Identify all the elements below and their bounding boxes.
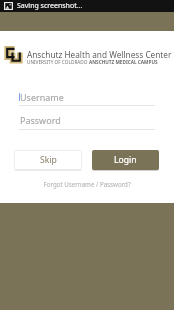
staticText: Anschutz Health and Wellness Center bbox=[27, 49, 172, 60]
staticText: Login bbox=[114, 154, 137, 166]
staticText: Password bbox=[20, 114, 61, 126]
button[interactable]: Username bbox=[19, 89, 155, 105]
staticText: ANSCHUTZ MEDICAL CAMPUS bbox=[89, 59, 158, 65]
staticText: Forgot Username / Password? bbox=[43, 180, 131, 188]
staticText: Username bbox=[20, 91, 64, 103]
button[interactable]: Password bbox=[20, 113, 155, 127]
staticText: Saving screenshot… bbox=[17, 1, 83, 11]
button[interactable]: Skip bbox=[14, 150, 82, 170]
button[interactable]: Login bbox=[92, 150, 159, 170]
staticText: Skip bbox=[40, 154, 57, 166]
staticText: UNIVERSITY OF COLORADO bbox=[27, 59, 89, 65]
button[interactable]: Forgot Username / Password? bbox=[0, 177, 174, 191]
